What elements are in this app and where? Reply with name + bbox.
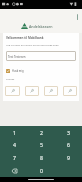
- staticText: 9: [67, 154, 70, 161]
- button[interactable]: PIN digit: [44, 86, 58, 96]
- staticText: Log ind med dit NemID og din personlige …: [6, 43, 59, 46]
- button[interactable]: PIN digit: [25, 86, 39, 96]
- button[interactable]: Test Testesen: [6, 51, 76, 61]
- staticText: 7: [13, 154, 16, 161]
- button[interactable]: 3: [55, 126, 82, 138]
- staticText: Andelskassen: [29, 24, 53, 29]
- button[interactable]: Delete: [0, 164, 28, 177]
- button[interactable]: 0: [28, 164, 55, 177]
- staticText: Navn: [8, 50, 14, 53]
- button[interactable]: 2: [28, 126, 55, 138]
- button[interactable]: 1: [0, 126, 28, 138]
- staticText: Husk mig: [12, 69, 24, 73]
- button[interactable]: Husk mig: [6, 69, 24, 73]
- staticText: 2: [40, 129, 43, 136]
- button[interactable]: Andelskassen: [21, 23, 53, 29]
- button[interactable]: PIN digit: [5, 86, 20, 96]
- staticText: 3: [67, 129, 70, 136]
- staticText: 4: [13, 141, 16, 148]
- button[interactable]: 8: [28, 151, 55, 164]
- staticText: 1: [13, 129, 16, 136]
- button[interactable]: 5: [28, 138, 55, 151]
- staticText: 8: [40, 154, 43, 161]
- staticText: 5: [40, 141, 43, 148]
- staticText: Pinkode: [6, 78, 15, 81]
- button[interactable]: 7: [0, 151, 28, 164]
- staticText: 0: [40, 167, 43, 174]
- button[interactable]: 6: [55, 138, 82, 151]
- staticText: Velkommen til Mobilbank: [6, 36, 44, 40]
- staticText: 6: [67, 141, 70, 148]
- button[interactable]: 4: [0, 138, 28, 151]
- staticText: Test Testesen: [8, 55, 26, 59]
- button[interactable]: 9: [55, 151, 82, 164]
- button[interactable]: PIN digit: [63, 86, 77, 96]
